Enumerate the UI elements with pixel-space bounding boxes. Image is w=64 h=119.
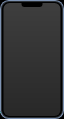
button[interactable]: Phone mockup xyxy=(0,0,64,119)
